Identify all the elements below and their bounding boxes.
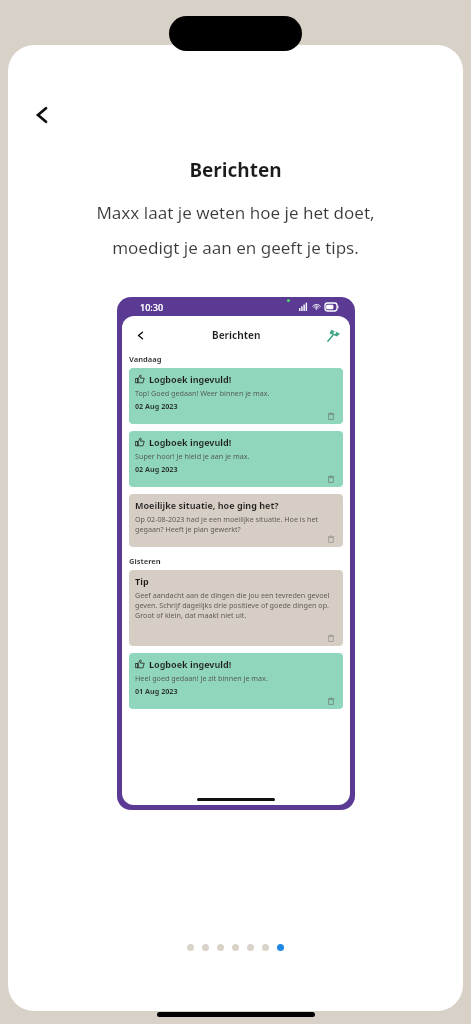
button[interactable]	[232, 944, 239, 951]
staticText: Super hoor! Je hield je aan je max.	[135, 451, 250, 461]
staticText: Maxx laat je weten hoe je het doet,	[8, 201, 463, 224]
button[interactable]: Logboek ingevuld!	[129, 431, 343, 487]
staticText: 02 Aug 2023	[135, 464, 178, 474]
button[interactable]: Back	[128, 323, 152, 347]
staticText: Vandaag	[129, 354, 162, 364]
button[interactable]: Tip	[129, 570, 343, 646]
staticText: Top! Goed gedaan! Weer binnen je max.	[135, 388, 270, 398]
button[interactable]	[202, 944, 209, 951]
staticText: Logboek ingevuld!	[149, 658, 232, 670]
staticText: Geef aandacht aan de dingen die jou een …	[135, 590, 337, 620]
button[interactable]: Moeilijke situatie, hoe ging het?	[129, 494, 343, 547]
staticText: Berichten	[8, 157, 463, 183]
button[interactable]: Pin	[323, 324, 345, 346]
staticText: moedigt je aan en geeft je tips.	[8, 236, 463, 259]
staticText: Tip	[135, 575, 149, 587]
staticText: 01 Aug 2023	[135, 686, 178, 696]
button[interactable]	[247, 944, 254, 951]
staticText: 10:30	[140, 301, 164, 313]
staticText: Berichten	[212, 328, 261, 342]
button[interactable]: Logboek ingevuld!	[129, 653, 343, 709]
button[interactable]	[187, 944, 194, 951]
button[interactable]	[217, 944, 224, 951]
staticText: Op 02-08-2023 had je een moeilijke situa…	[135, 514, 337, 534]
staticText: Logboek ingevuld!	[149, 436, 232, 448]
button[interactable]	[277, 944, 284, 951]
staticText: Heel goed gedaan! Je zit binnen je max.	[135, 673, 268, 683]
button[interactable]	[262, 944, 269, 951]
staticText: 02 Aug 2023	[135, 401, 178, 411]
staticText: Gisteren	[129, 556, 161, 566]
staticText: Logboek ingevuld!	[149, 373, 232, 385]
staticText: Moeilijke situatie, hoe ging het?	[135, 499, 279, 511]
button[interactable]: Back	[20, 93, 64, 137]
button[interactable]: Logboek ingevuld!	[129, 368, 343, 424]
